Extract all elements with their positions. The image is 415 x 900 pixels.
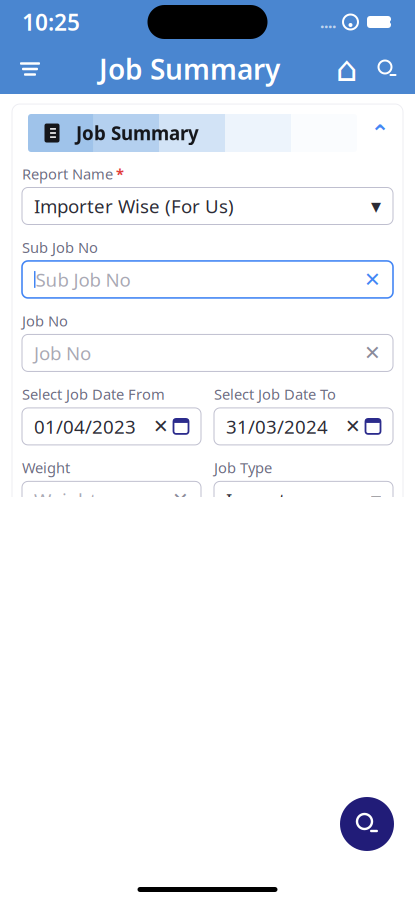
staticText: ✕: [364, 342, 381, 364]
staticText: ✕: [364, 782, 381, 805]
staticText: 01/04/2023: [34, 414, 136, 439]
staticText: Weight: [34, 487, 97, 512]
button[interactable]: Collapse Job Summary: [357, 114, 403, 152]
staticText: Importer Wise (For Us): [34, 194, 234, 218]
staticText: Import: [226, 487, 286, 512]
staticText: *: [116, 164, 124, 183]
staticText: 10:25: [22, 7, 80, 37]
button[interactable]: Sub Job No: [22, 261, 393, 298]
staticText: Sub Job No: [35, 267, 130, 292]
staticText: Job No: [34, 340, 91, 365]
staticText: ⌃: [370, 120, 389, 146]
button[interactable]: Job No: [22, 334, 393, 371]
button[interactable]: Menu: [8, 47, 52, 91]
staticText: ....: [320, 11, 336, 33]
button[interactable]: Ref Party Name: [22, 775, 393, 812]
button[interactable]: 31/03/2024: [214, 408, 393, 445]
staticText: ✕: [172, 488, 189, 511]
staticText: ▾: [371, 488, 381, 511]
button[interactable]: 01/04/2023: [22, 408, 201, 445]
staticText: Job Type: [214, 458, 272, 477]
staticText: ✕: [364, 268, 381, 291]
button[interactable]: Import: [214, 481, 393, 518]
staticText: Weight: [22, 458, 70, 477]
button[interactable]: Job Summary: [28, 114, 357, 152]
staticText: Job Summary: [76, 121, 199, 145]
staticText: Sub Job No: [22, 237, 98, 257]
staticText: Job No: [22, 311, 68, 330]
button[interactable]: Importer Wise (For Us): [22, 187, 393, 224]
staticText: ✕: [153, 416, 169, 437]
button[interactable]: Search: [339, 796, 395, 852]
button[interactable]: Home: [327, 47, 367, 91]
staticText: Select Job Date From: [22, 384, 165, 404]
staticText: ▾: [371, 195, 381, 217]
button[interactable]: Weight: [22, 481, 201, 518]
staticText: Report Name: [22, 164, 113, 183]
button[interactable]: Search: [367, 47, 407, 91]
staticText: Job Summary: [99, 50, 280, 88]
staticText: 31/03/2024: [226, 414, 328, 439]
staticText: Select Job Date To: [214, 384, 336, 404]
staticText: ⌂: [336, 49, 358, 89]
button[interactable]: Sold To: [22, 849, 393, 886]
staticText: ✕: [345, 416, 361, 437]
